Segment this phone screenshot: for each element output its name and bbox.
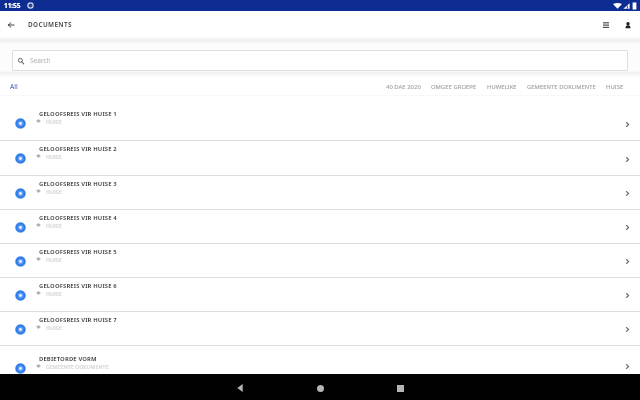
staticText: GELOOFSREIS VIR HUISE 6 bbox=[39, 282, 117, 290]
button[interactable]: Account bbox=[619, 11, 635, 37]
button[interactable]: GELOOFSREIS VIR HUISE 6 bbox=[0, 278, 640, 311]
button[interactable]: GELOOFSREIS VIR HUISE 1 bbox=[0, 96, 640, 140]
staticText: GELOOFSREIS VIR HUISE 5 bbox=[39, 248, 117, 256]
button[interactable]: Recents bbox=[380, 374, 420, 400]
staticText: DEBIETORDE VORM bbox=[39, 355, 97, 363]
button[interactable]: Home bbox=[300, 374, 340, 400]
staticText: HUISE bbox=[46, 222, 62, 229]
button[interactable]: GELOOFSREIS VIR HUISE 7 bbox=[0, 312, 640, 345]
staticText: GEMEENTE DOKUMENTE bbox=[527, 83, 596, 91]
button[interactable]: HUISE bbox=[601, 79, 629, 95]
staticText: All bbox=[10, 82, 18, 91]
staticText: HUISE bbox=[46, 324, 62, 331]
button[interactable]: Back bbox=[220, 374, 260, 400]
button[interactable]: HUWELIKE bbox=[482, 79, 522, 95]
button[interactable]: GELOOFSREIS VIR HUISE 3 bbox=[0, 176, 640, 209]
staticText: OMGEE GROEPE bbox=[431, 83, 477, 91]
button[interactable]: GELOOFSREIS VIR HUISE 4 bbox=[0, 210, 640, 243]
staticText: GELOOFSREIS VIR HUISE 4 bbox=[39, 214, 117, 222]
button[interactable]: OMGEE GROEPE bbox=[426, 79, 482, 95]
staticText: GELOOFSREIS VIR HUISE 3 bbox=[39, 180, 117, 188]
staticText: DOCUMENTS bbox=[28, 20, 72, 29]
staticText: HUISE bbox=[46, 118, 62, 125]
button[interactable]: GELOOFSREIS VIR HUISE 5 bbox=[0, 244, 640, 277]
staticText: GELOOFSREIS VIR HUISE 2 bbox=[39, 145, 117, 153]
staticText: GELOOFSREIS VIR HUISE 1 bbox=[39, 110, 117, 118]
button[interactable]: DEBIETORDE VORM bbox=[0, 346, 640, 374]
staticText: Search bbox=[30, 56, 51, 65]
button[interactable]: GELOOFSREIS VIR HUISE 2 bbox=[0, 141, 640, 175]
staticText: 40 DAE 2020 bbox=[386, 83, 421, 91]
button[interactable]: List options bbox=[597, 11, 613, 37]
staticText: HUISE bbox=[606, 83, 624, 91]
staticText: HUISE bbox=[46, 153, 62, 160]
button[interactable]: Search bbox=[12, 50, 628, 71]
staticText: HUISE bbox=[46, 290, 62, 297]
staticText: HUWELIKE bbox=[487, 83, 517, 91]
staticText: 11:55 bbox=[4, 1, 21, 10]
button[interactable]: 40 DAE 2020 bbox=[381, 79, 426, 95]
staticText: GELOOFSREIS VIR HUISE 7 bbox=[39, 316, 117, 324]
staticText: HUISE bbox=[46, 256, 62, 263]
button[interactable]: Back bbox=[0, 11, 22, 37]
button[interactable]: All bbox=[0, 78, 28, 95]
button[interactable]: GEMEENTE DOKUMENTE bbox=[522, 79, 601, 95]
staticText: HUISE bbox=[46, 188, 62, 195]
staticText: GEMEENTE DOKUMENTE bbox=[46, 363, 109, 370]
